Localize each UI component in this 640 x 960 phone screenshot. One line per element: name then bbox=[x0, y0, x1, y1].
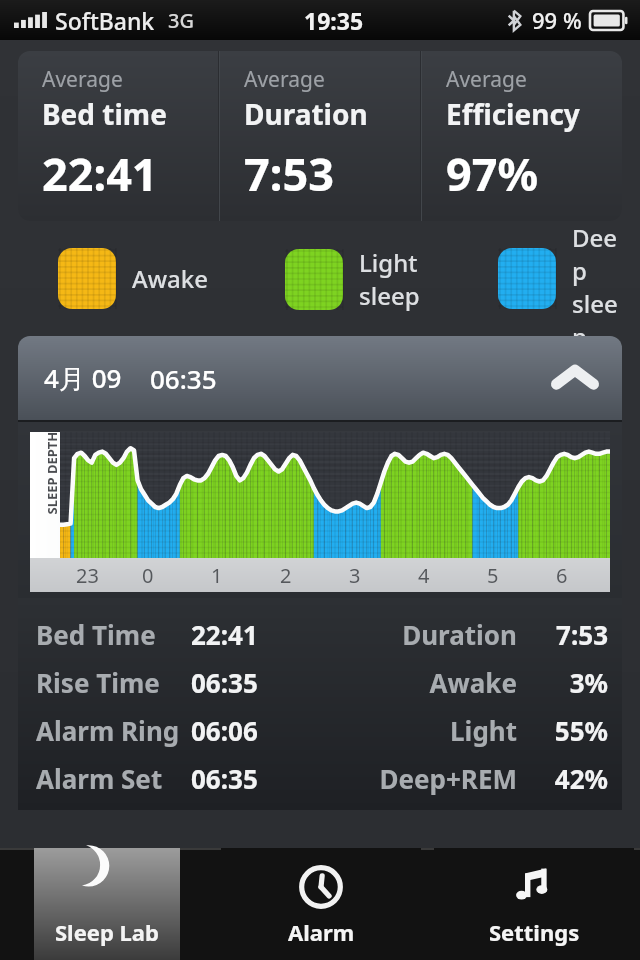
staticText: Bed time bbox=[42, 95, 167, 133]
staticText: 97% bbox=[446, 143, 539, 204]
staticText: 06:06 bbox=[191, 713, 258, 748]
button[interactable]: Alarm Ring bbox=[36, 706, 608, 754]
staticText: Alarm bbox=[288, 917, 355, 947]
button[interactable]: Alarm Set bbox=[36, 754, 608, 802]
staticText: Deep+REM bbox=[379, 761, 517, 796]
button[interactable]: Settings bbox=[434, 848, 634, 960]
staticText: 7:53 bbox=[556, 617, 608, 652]
staticText: Alarm Set bbox=[36, 761, 163, 796]
staticText: Awake bbox=[429, 665, 517, 700]
staticText: Average bbox=[42, 65, 123, 94]
staticText: 4月 09 bbox=[44, 360, 122, 396]
button[interactable]: Bed Time bbox=[36, 610, 608, 658]
staticText: Deep bbox=[572, 221, 624, 287]
staticText: 22:41 bbox=[42, 143, 158, 204]
button[interactable]: Rise Time bbox=[36, 658, 608, 706]
button[interactable]: Sleep Lab bbox=[34, 848, 180, 960]
staticText: Average bbox=[446, 65, 527, 94]
staticText: 6 bbox=[556, 562, 568, 589]
staticText: 06:35 bbox=[191, 665, 258, 700]
staticText: 3% bbox=[569, 665, 608, 700]
staticText: SLEEP DEPTH bbox=[42, 431, 60, 514]
staticText: 5 bbox=[487, 562, 499, 589]
staticText: Duration bbox=[402, 617, 517, 652]
staticText: 42% bbox=[554, 761, 608, 796]
staticText: Light bbox=[450, 713, 517, 748]
staticText: 22:41 bbox=[191, 617, 258, 652]
staticText: 1 bbox=[211, 562, 223, 589]
staticText: 06:35 bbox=[191, 761, 258, 796]
staticText: Bed Time bbox=[36, 617, 156, 652]
button[interactable]: Alarm bbox=[221, 848, 421, 960]
staticText: 0 bbox=[142, 562, 154, 589]
staticText: SoftBank bbox=[55, 5, 155, 36]
staticText: 99 % bbox=[532, 5, 582, 35]
staticText: 4 bbox=[418, 562, 430, 589]
staticText: 2 bbox=[280, 562, 292, 589]
staticText: Sleep Lab bbox=[55, 917, 159, 947]
staticText: sleep bbox=[359, 279, 420, 312]
button[interactable]: Average bbox=[18, 51, 622, 221]
staticText: sleep bbox=[572, 287, 624, 336]
staticText: Settings bbox=[489, 917, 580, 947]
staticText: Awake bbox=[132, 262, 209, 295]
staticText: 3G bbox=[168, 7, 194, 34]
staticText: Alarm Ring bbox=[36, 713, 180, 748]
staticText: Light bbox=[359, 246, 418, 279]
staticText: 19:35 bbox=[304, 5, 364, 36]
button[interactable]: 4月 09 bbox=[18, 336, 622, 420]
staticText: 3 bbox=[349, 562, 361, 589]
staticText: Efficiency bbox=[446, 95, 580, 133]
staticText: 06:35 bbox=[150, 361, 217, 396]
staticText: 7:53 bbox=[244, 143, 334, 204]
staticText: Duration bbox=[244, 95, 368, 133]
staticText: 55% bbox=[554, 713, 608, 748]
other: Collapse bbox=[554, 365, 596, 391]
staticText: Rise Time bbox=[36, 665, 160, 700]
staticText: Average bbox=[244, 65, 325, 94]
staticText: 23 bbox=[76, 562, 99, 589]
